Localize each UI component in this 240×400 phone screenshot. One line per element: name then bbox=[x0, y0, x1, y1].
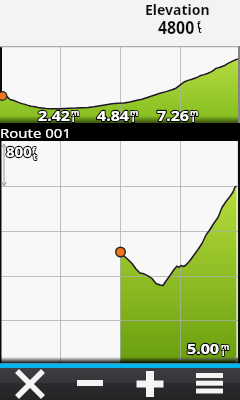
staticText: m bbox=[221, 341, 230, 353]
staticText: 4.84 bbox=[97, 105, 129, 125]
staticText: m bbox=[71, 107, 80, 119]
button[interactable]: Route 001 bbox=[0, 123, 240, 141]
staticText: f bbox=[32, 145, 36, 157]
staticText: i bbox=[192, 113, 195, 125]
staticText: f bbox=[32, 145, 36, 157]
staticText: 2.42 bbox=[38, 105, 70, 125]
staticText: i bbox=[132, 113, 135, 125]
staticText: t bbox=[198, 24, 202, 36]
button[interactable]: Zoom out bbox=[60, 368, 120, 400]
staticText: m bbox=[130, 107, 139, 119]
staticText: m bbox=[221, 341, 230, 353]
staticText: i bbox=[222, 347, 225, 359]
button[interactable]: Close bbox=[0, 368, 60, 400]
staticText: i bbox=[192, 113, 195, 125]
staticText: i bbox=[222, 347, 225, 359]
button[interactable]: Zoom in bbox=[120, 368, 180, 400]
staticText: i bbox=[72, 113, 75, 125]
button[interactable]: Elevation bbox=[118, 0, 240, 46]
staticText: 4800 bbox=[158, 15, 195, 40]
staticText: 7.26 bbox=[157, 105, 189, 125]
staticText: m bbox=[190, 107, 199, 119]
staticText: m bbox=[71, 107, 80, 119]
staticText: m bbox=[130, 107, 139, 119]
staticText: Elevation bbox=[145, 0, 210, 19]
staticText: 7.26 bbox=[157, 105, 189, 125]
staticText: 5.00 bbox=[187, 338, 219, 358]
button[interactable]: Menu bbox=[180, 368, 240, 400]
staticText: t bbox=[33, 151, 37, 163]
staticText: f bbox=[197, 19, 201, 31]
staticText: 5.00 bbox=[187, 338, 219, 358]
staticText: t bbox=[33, 151, 37, 163]
staticText: m bbox=[190, 107, 199, 119]
staticText: 800 bbox=[6, 141, 32, 161]
staticText: Route 001 bbox=[0, 124, 71, 142]
staticText: 800 bbox=[6, 141, 32, 161]
staticText: 4.84 bbox=[97, 105, 129, 125]
staticText: 2.42 bbox=[38, 105, 70, 125]
staticText: i bbox=[72, 113, 75, 125]
staticText: i bbox=[132, 113, 135, 125]
